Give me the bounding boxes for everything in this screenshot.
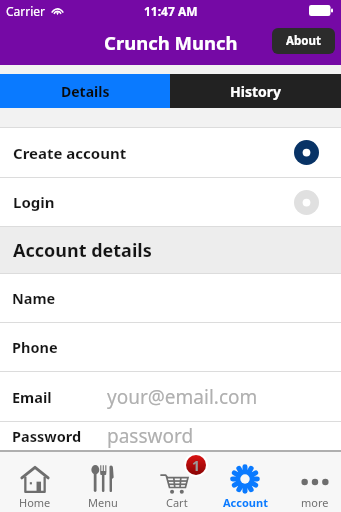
- button[interactable]: Account: [211, 452, 279, 512]
- button[interactable]: Phone: [0, 323, 341, 371]
- button[interactable]: Password: [0, 422, 341, 450]
- button[interactable]: Name: [0, 274, 341, 322]
- button[interactable]: Create account: [0, 128, 341, 177]
- staticText: Account details: [13, 238, 152, 263]
- staticText: Home: [19, 495, 51, 510]
- staticText: Password: [12, 426, 107, 446]
- staticText: Name: [12, 288, 107, 308]
- staticText: 11:47 AM: [144, 3, 198, 19]
- staticText: Phone: [12, 337, 107, 357]
- staticText: History: [230, 82, 282, 101]
- staticText: Email: [12, 387, 107, 407]
- staticText: Crunch Munch: [104, 30, 238, 55]
- staticText: About: [286, 33, 321, 49]
- button[interactable]: About: [272, 28, 335, 54]
- button[interactable]: Details: [0, 74, 170, 108]
- staticText: more: [301, 495, 329, 510]
- staticText: Cart: [166, 495, 188, 510]
- button[interactable]: Home: [1, 452, 69, 512]
- button[interactable]: Login: [0, 178, 341, 226]
- staticText: your@email.com: [107, 384, 258, 410]
- staticText: Details: [61, 82, 110, 101]
- staticText: Create account: [13, 143, 294, 163]
- button[interactable]: Email: [0, 372, 341, 421]
- staticText: password: [107, 423, 194, 449]
- button[interactable]: Menu: [69, 452, 137, 512]
- button[interactable]: History: [170, 74, 341, 108]
- staticText: Carrier: [6, 3, 46, 19]
- staticText: Menu: [88, 495, 118, 510]
- button[interactable]: more: [281, 452, 341, 512]
- staticText: 1: [192, 456, 201, 475]
- staticText: Account: [223, 495, 268, 510]
- staticText: Login: [13, 192, 294, 212]
- button[interactable]: 1: [143, 452, 211, 512]
